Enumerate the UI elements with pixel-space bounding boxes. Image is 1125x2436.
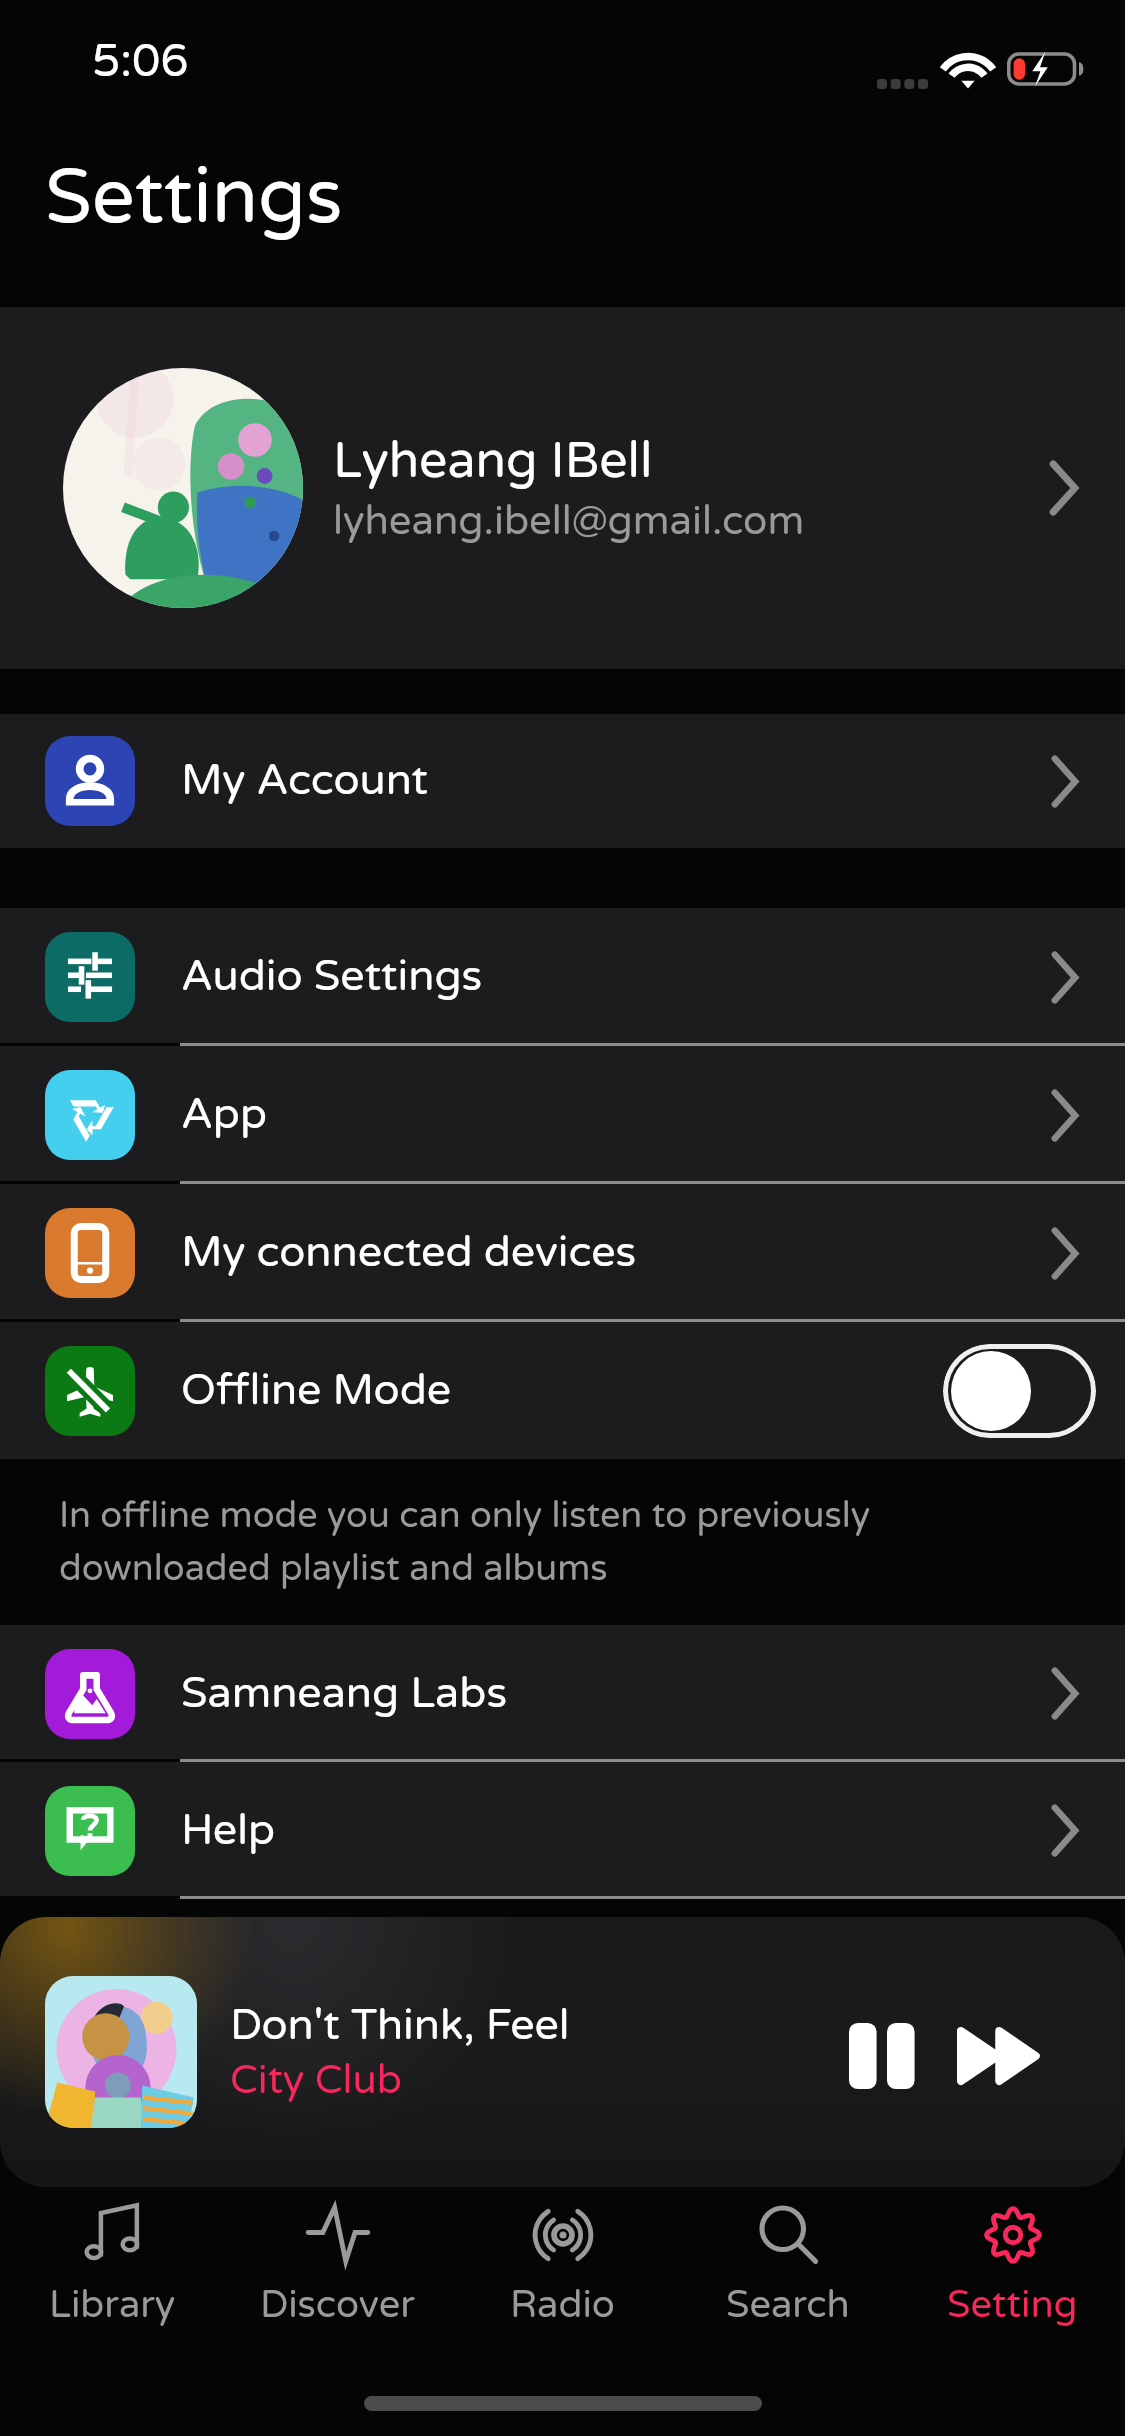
staticText: Search — [726, 2282, 850, 2328]
staticText: Audio Settings — [181, 951, 1050, 1003]
button[interactable]: Help — [0, 1762, 1125, 1899]
staticText: Library — [49, 2282, 176, 2328]
button[interactable]: Setting — [900, 2187, 1125, 2372]
staticText: Discover — [260, 2282, 415, 2328]
staticText: Offline Mode — [181, 1365, 943, 1417]
button[interactable]: Pause — [847, 2016, 927, 2096]
button[interactable]: Lyheang IBell — [0, 307, 1125, 669]
staticText: 5:06 — [92, 35, 189, 89]
staticText: My Account — [181, 755, 1050, 807]
staticText: City Club — [230, 2056, 403, 2104]
staticText: My connected devices — [181, 1227, 1050, 1279]
button[interactable]: Radio — [450, 2187, 675, 2372]
button[interactable]: My Account — [0, 714, 1125, 848]
staticText: Lyheang IBell — [333, 431, 653, 491]
staticText: App — [181, 1089, 1050, 1141]
staticText: Radio — [510, 2282, 615, 2328]
staticText: Help — [181, 1805, 1050, 1857]
staticText: Setting — [947, 2282, 1078, 2328]
button[interactable]: Audio Settings — [0, 908, 1125, 1046]
staticText: lyheang.ibell@gmail.com — [333, 497, 805, 545]
button[interactable]: Offline Mode toggle — [943, 1344, 1096, 1438]
button[interactable]: Library — [0, 2187, 225, 2372]
button[interactable]: Samneang Labs — [0, 1625, 1125, 1762]
staticText: In offline mode you can only listen to p… — [59, 1494, 870, 1591]
button[interactable]: Offline Mode — [0, 1322, 1125, 1459]
button[interactable]: Search — [675, 2187, 900, 2372]
button[interactable]: Next — [957, 2011, 1047, 2101]
button[interactable]: My connected devices — [0, 1184, 1125, 1322]
button[interactable]: Don't Think, Feel — [0, 1917, 1125, 2187]
staticText: Don't Think, Feel — [230, 2000, 570, 2052]
button[interactable]: Discover — [225, 2187, 450, 2372]
staticText: Samneang Labs — [181, 1668, 1050, 1720]
button[interactable]: App — [0, 1046, 1125, 1184]
staticText: Settings — [45, 152, 343, 244]
